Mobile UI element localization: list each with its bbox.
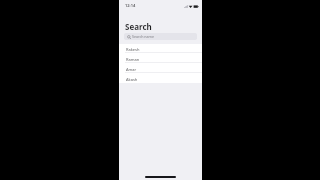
staticText: Rakesh	[126, 47, 140, 52]
button[interactable]: Amar	[119, 63, 202, 73]
staticText: Akash	[126, 77, 138, 82]
staticText: 12:14	[125, 3, 136, 8]
button[interactable]: Search name	[124, 33, 197, 40]
other: Signal, Wi-Fi and battery status	[184, 4, 199, 9]
other: Home indicator	[145, 176, 176, 178]
button[interactable]: Raman	[119, 53, 202, 63]
button[interactable]: Akash	[119, 73, 202, 83]
staticText: Search name	[132, 34, 154, 39]
button[interactable]: Rakesh	[119, 44, 202, 53]
staticText: Raman	[126, 57, 140, 62]
staticText: Amar	[126, 67, 137, 72]
staticText: Search	[125, 21, 152, 32]
